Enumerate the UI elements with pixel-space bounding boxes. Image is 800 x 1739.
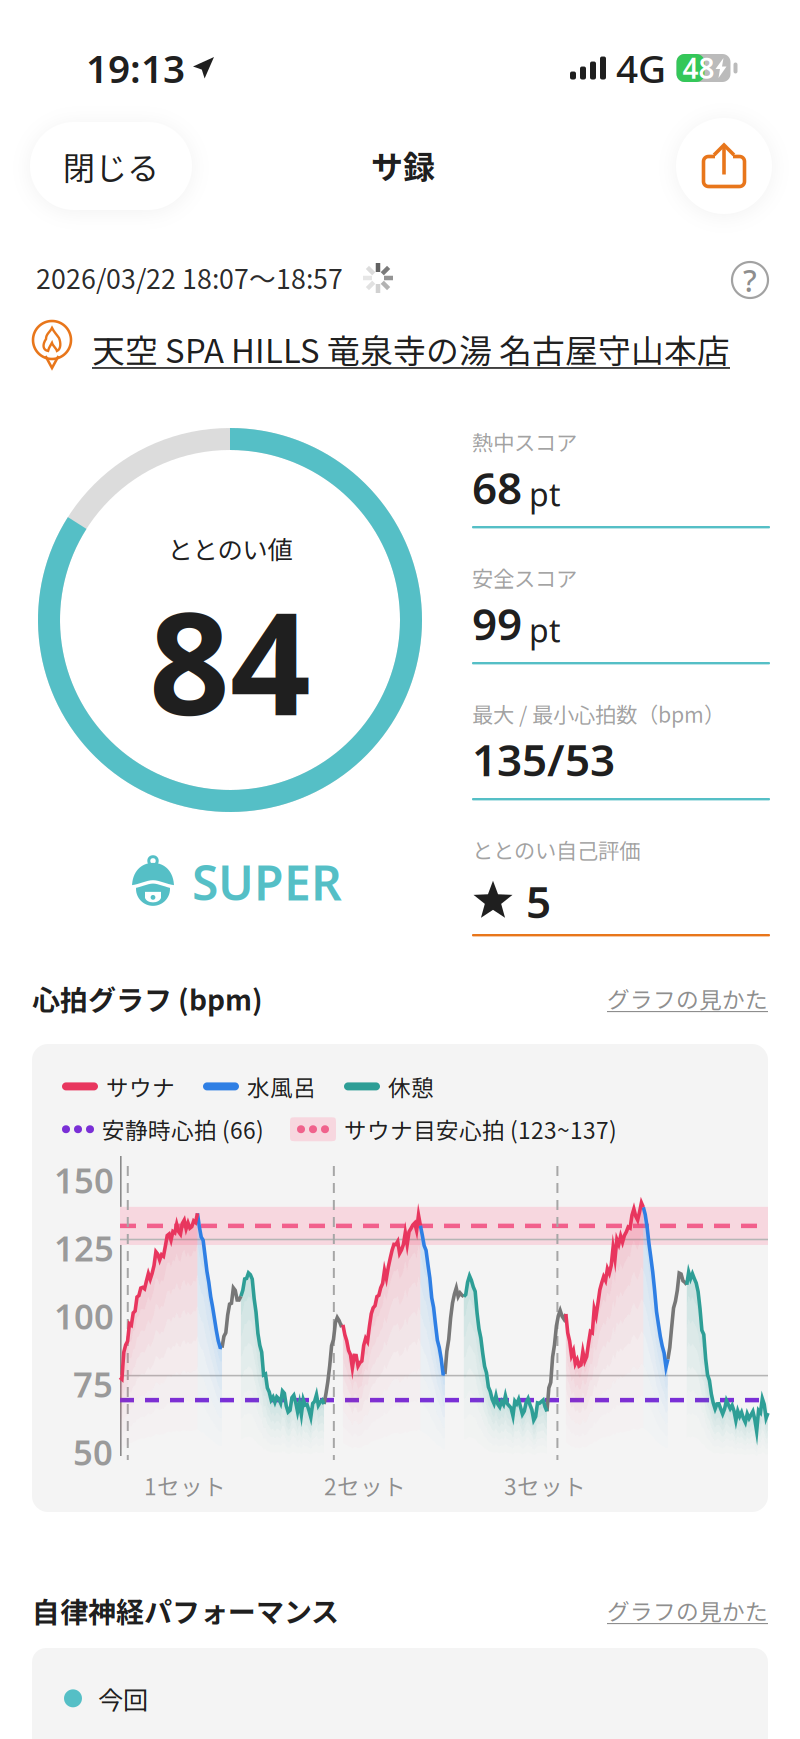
button[interactable]: Help	[726, 256, 774, 304]
button[interactable]: グラフの見かた	[607, 1594, 768, 1627]
staticText: SUPER	[192, 850, 342, 914]
staticText: 閉じる	[63, 143, 159, 189]
staticText: 68	[472, 458, 522, 516]
staticText: 今回	[98, 1680, 148, 1717]
staticText: 75	[73, 1361, 113, 1407]
staticText: グラフの見かた	[607, 982, 768, 1015]
staticText: 4G	[616, 42, 666, 94]
staticText: 125	[54, 1225, 114, 1271]
staticText: 3セット	[504, 1469, 586, 1502]
staticText: 自律神経パフォーマンス	[32, 1590, 339, 1630]
button[interactable]: Share	[676, 118, 772, 214]
staticText: サウナ目安心拍 (123~137)	[344, 1113, 617, 1146]
staticText: 水風呂	[247, 1070, 316, 1103]
staticText: 84	[149, 566, 311, 754]
staticText: 1セット	[144, 1469, 226, 1502]
staticText: 安全スコア	[472, 562, 577, 593]
staticText: サ録	[371, 142, 435, 188]
staticText: グラフの見かた	[607, 1594, 768, 1627]
staticText: 天空 SPA HILLS 竜泉寺の湯 名古屋守山本店	[92, 325, 730, 372]
staticText: 150	[54, 1157, 114, 1203]
staticText: 休憩	[388, 1070, 434, 1103]
staticText: 最大 / 最小心拍数（bpm）	[472, 698, 725, 729]
staticText: ととのい自己評価	[472, 834, 640, 865]
staticText: サウナ	[106, 1070, 175, 1103]
staticText: 5	[526, 872, 551, 930]
staticText: pt	[529, 473, 561, 515]
staticText: 99	[472, 594, 522, 652]
button[interactable]: 天空 SPA HILLS 竜泉寺の湯 名古屋守山本店	[92, 325, 730, 372]
staticText: ?	[743, 260, 757, 300]
button[interactable]: 閉じる	[30, 122, 192, 210]
staticText: 心拍グラフ (bpm)	[32, 978, 263, 1018]
staticText: 熱中スコア	[472, 426, 577, 457]
staticText: ととのい値	[167, 530, 292, 566]
staticText: 19:13	[86, 42, 185, 94]
staticText: 2026/03/22 18:07〜18:57	[36, 258, 343, 297]
button[interactable]: グラフの見かた	[607, 982, 768, 1015]
staticText: 135/53	[472, 730, 615, 788]
staticText: pt	[529, 609, 561, 651]
staticText: 100	[54, 1293, 114, 1339]
staticText: 2セット	[324, 1469, 406, 1502]
staticText: 安静時心拍 (66)	[102, 1113, 264, 1146]
staticText: 50	[73, 1429, 113, 1475]
staticText: 48	[682, 49, 714, 87]
